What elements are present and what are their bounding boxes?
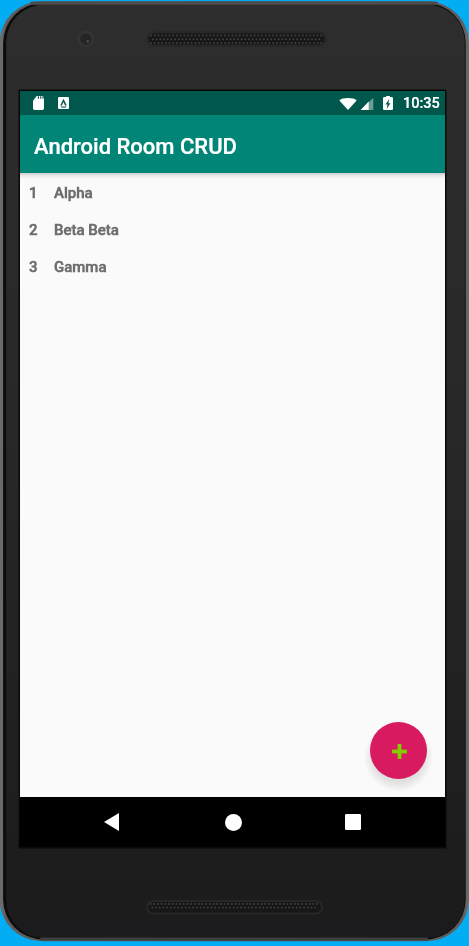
staticText: 1 [29,184,54,202]
staticText: Beta Beta [54,221,119,239]
button[interactable]: Home [208,797,258,847]
staticText: Alpha [54,184,93,202]
button[interactable]: 1 [20,174,445,211]
staticText: 10:35 [403,95,440,112]
staticText: 3 [29,258,54,276]
button[interactable]: 3 [20,248,445,285]
button[interactable]: Recent apps [328,797,378,847]
button[interactable]: Back [86,797,136,847]
button[interactable]: Add item [370,722,427,779]
staticText: Android Room CRUD [34,134,237,160]
button[interactable]: 2 [20,211,445,248]
staticText: Gamma [54,258,107,276]
staticText: 2 [29,221,54,239]
